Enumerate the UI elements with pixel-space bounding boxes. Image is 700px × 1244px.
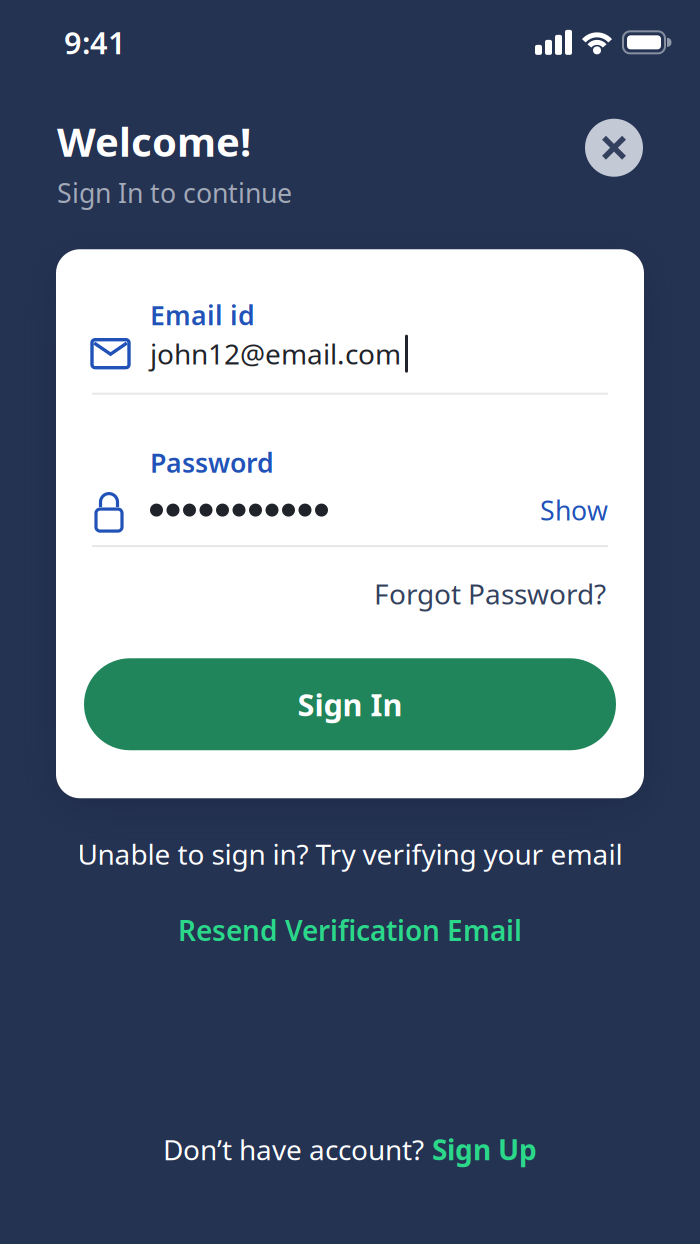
staticText: Sign In — [297, 684, 402, 725]
staticText: Don’t have account? — [163, 1131, 424, 1168]
button[interactable]: Resend Verification Email — [178, 911, 522, 949]
button[interactable]: Sign In — [84, 658, 616, 750]
staticText: Resend Verification Email — [178, 911, 522, 949]
staticText: Unable to sign in? Try verifying your em… — [77, 835, 622, 872]
button[interactable]: Close — [585, 119, 643, 177]
button[interactable]: Show — [540, 492, 608, 528]
staticText: Email id — [150, 297, 255, 333]
staticText: Welcome! — [57, 115, 251, 168]
staticText: Show — [540, 492, 608, 528]
staticText: Password — [150, 445, 274, 480]
staticText: Sign In to continue — [57, 175, 292, 210]
button[interactable]: Forgot Password? — [374, 575, 606, 612]
staticText: Sign Up — [432, 1131, 537, 1168]
staticText: john12@email.com — [150, 335, 401, 372]
staticText: 9:41 — [64, 22, 126, 63]
staticText: Forgot Password? — [374, 575, 606, 612]
button[interactable]: Don’t have account? — [163, 1131, 537, 1168]
